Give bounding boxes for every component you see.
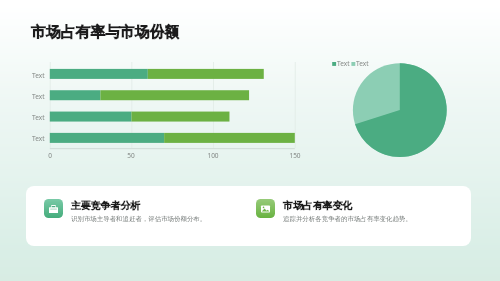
staticText: 市场占有率变化 [283,199,353,211]
staticText: 50 [124,151,138,160]
button[interactable]: Market share trend [256,199,412,223]
staticText: 150 [288,151,302,160]
staticText: Text [32,113,45,122]
button[interactable]: Competitor analysis [44,199,207,223]
staticText: Text [337,59,350,68]
staticText: Text [32,134,45,143]
staticText: 100 [206,151,220,160]
staticText: 识别市场主导者和追赶者，评估市场份额分布。 [71,215,207,223]
staticText: 追踪并分析各竞争者的市场占有率变化趋势。 [283,215,412,223]
staticText: 主要竞争者分析 [71,199,141,211]
other: Market share trend [256,199,275,218]
staticText: Text [32,92,45,101]
staticText: 市场占有率与市场份额 [31,23,179,42]
staticText: 0 [43,151,57,160]
staticText: Text [32,71,45,80]
staticText: Text [356,59,369,68]
other: Competitor analysis [44,199,63,218]
